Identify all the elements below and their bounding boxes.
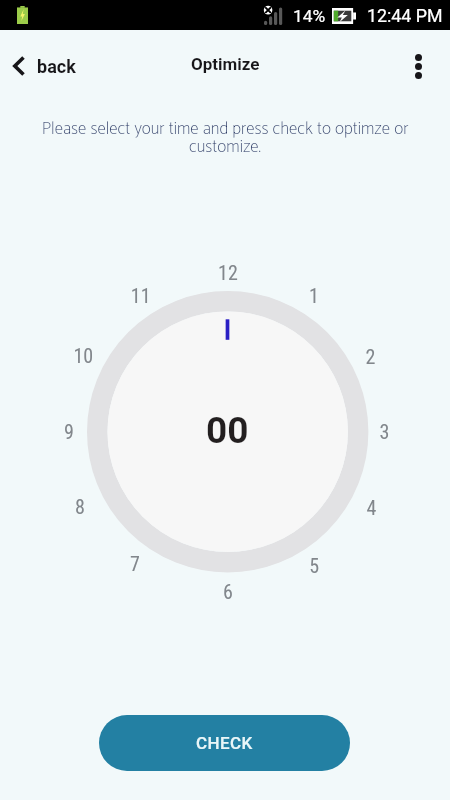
staticText: CHECK bbox=[196, 733, 253, 753]
staticText: 14% bbox=[293, 6, 326, 26]
button[interactable]: CHECK bbox=[99, 715, 350, 771]
staticText: 00 bbox=[206, 409, 249, 452]
staticText: Optimize bbox=[191, 54, 260, 74]
button[interactable]: More options bbox=[399, 36, 450, 96]
button[interactable]: back bbox=[0, 36, 90, 96]
staticText: 12:44 PM bbox=[367, 5, 443, 26]
staticText: Please select your time and press check … bbox=[16, 115, 434, 162]
staticText: back bbox=[37, 56, 76, 77]
